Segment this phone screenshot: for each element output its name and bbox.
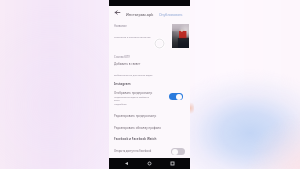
button[interactable]: Back xyxy=(115,10,120,15)
staticText: Добавить в сюжет xyxy=(114,62,141,66)
staticText: Выберите места для показа видео xyxy=(114,74,153,77)
staticText: Facebook и Facebook Watch xyxy=(114,137,157,141)
staticText: Инстаграм.apk xyxy=(126,12,154,17)
staticText: Предпросмотры видео и профиля в xyxy=(114,96,149,99)
staticText: Ссылка ЮТУ xyxy=(114,55,131,59)
button[interactable]: Back xyxy=(123,160,130,167)
staticText: Instagram xyxy=(114,82,131,86)
button[interactable]: Опубликовать xyxy=(159,12,183,17)
staticText: Открыть доступ на Facebook xyxy=(114,149,152,153)
staticText: Описание и хэштеги/геоточка xyxy=(114,35,151,38)
button[interactable]: Recent apps xyxy=(169,160,176,167)
button[interactable]: Switch on xyxy=(169,93,183,100)
staticText: ленте xyxy=(114,99,120,102)
button[interactable]: Switch off xyxy=(171,148,185,155)
button[interactable]: Home xyxy=(146,160,153,167)
button[interactable]: Редактировать предпросмотр xyxy=(114,114,157,118)
button[interactable]: Подробнее xyxy=(114,103,127,106)
staticText: Название xyxy=(114,24,127,28)
button[interactable]: Редактировать обложку профиля xyxy=(114,126,161,130)
staticText: Отображать предпросмотр xyxy=(114,91,153,95)
